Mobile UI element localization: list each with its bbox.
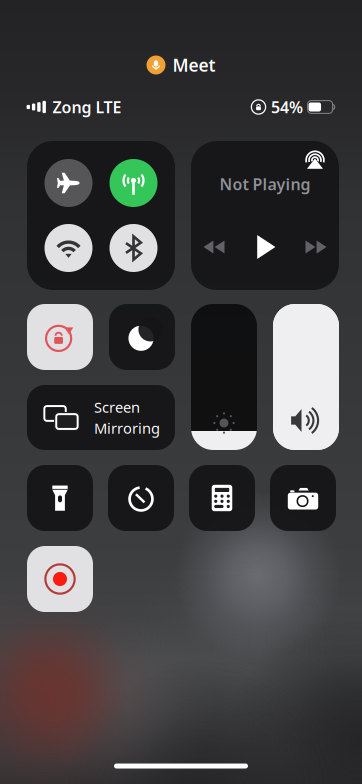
button[interactable]: Bluetooth	[109, 224, 157, 272]
button[interactable]: Wi-Fi	[44, 224, 92, 272]
button[interactable]: Rewind	[203, 240, 224, 253]
button[interactable]: Airplane Mode	[44, 159, 92, 207]
staticText: Meet	[172, 53, 215, 76]
button[interactable]: Rotation Lock	[27, 304, 93, 370]
button[interactable]: Brightness	[191, 304, 257, 450]
button[interactable]: Timer	[108, 465, 174, 531]
staticText: 54%	[271, 96, 303, 118]
button[interactable]: Fast Forward	[305, 240, 326, 253]
button[interactable]: Meet	[146, 53, 215, 76]
button[interactable]: Camera	[270, 465, 336, 531]
button[interactable]: Screen Recording	[27, 546, 93, 612]
button[interactable]: Play	[252, 234, 278, 260]
button[interactable]: Cellular Data	[109, 159, 157, 207]
staticText: Zong LTE	[52, 96, 121, 118]
button[interactable]: AirPlay	[305, 149, 325, 169]
button[interactable]: Flashlight	[27, 465, 93, 531]
staticText: Not Playing	[219, 173, 310, 195]
button[interactable]: Do Not Disturb	[109, 304, 175, 370]
button[interactable]: Volume	[273, 304, 339, 450]
staticText: Mirroring	[94, 418, 160, 438]
staticText: Screen	[94, 397, 140, 417]
button[interactable]: Calculator	[189, 465, 255, 531]
button[interactable]: Screen	[27, 385, 175, 450]
